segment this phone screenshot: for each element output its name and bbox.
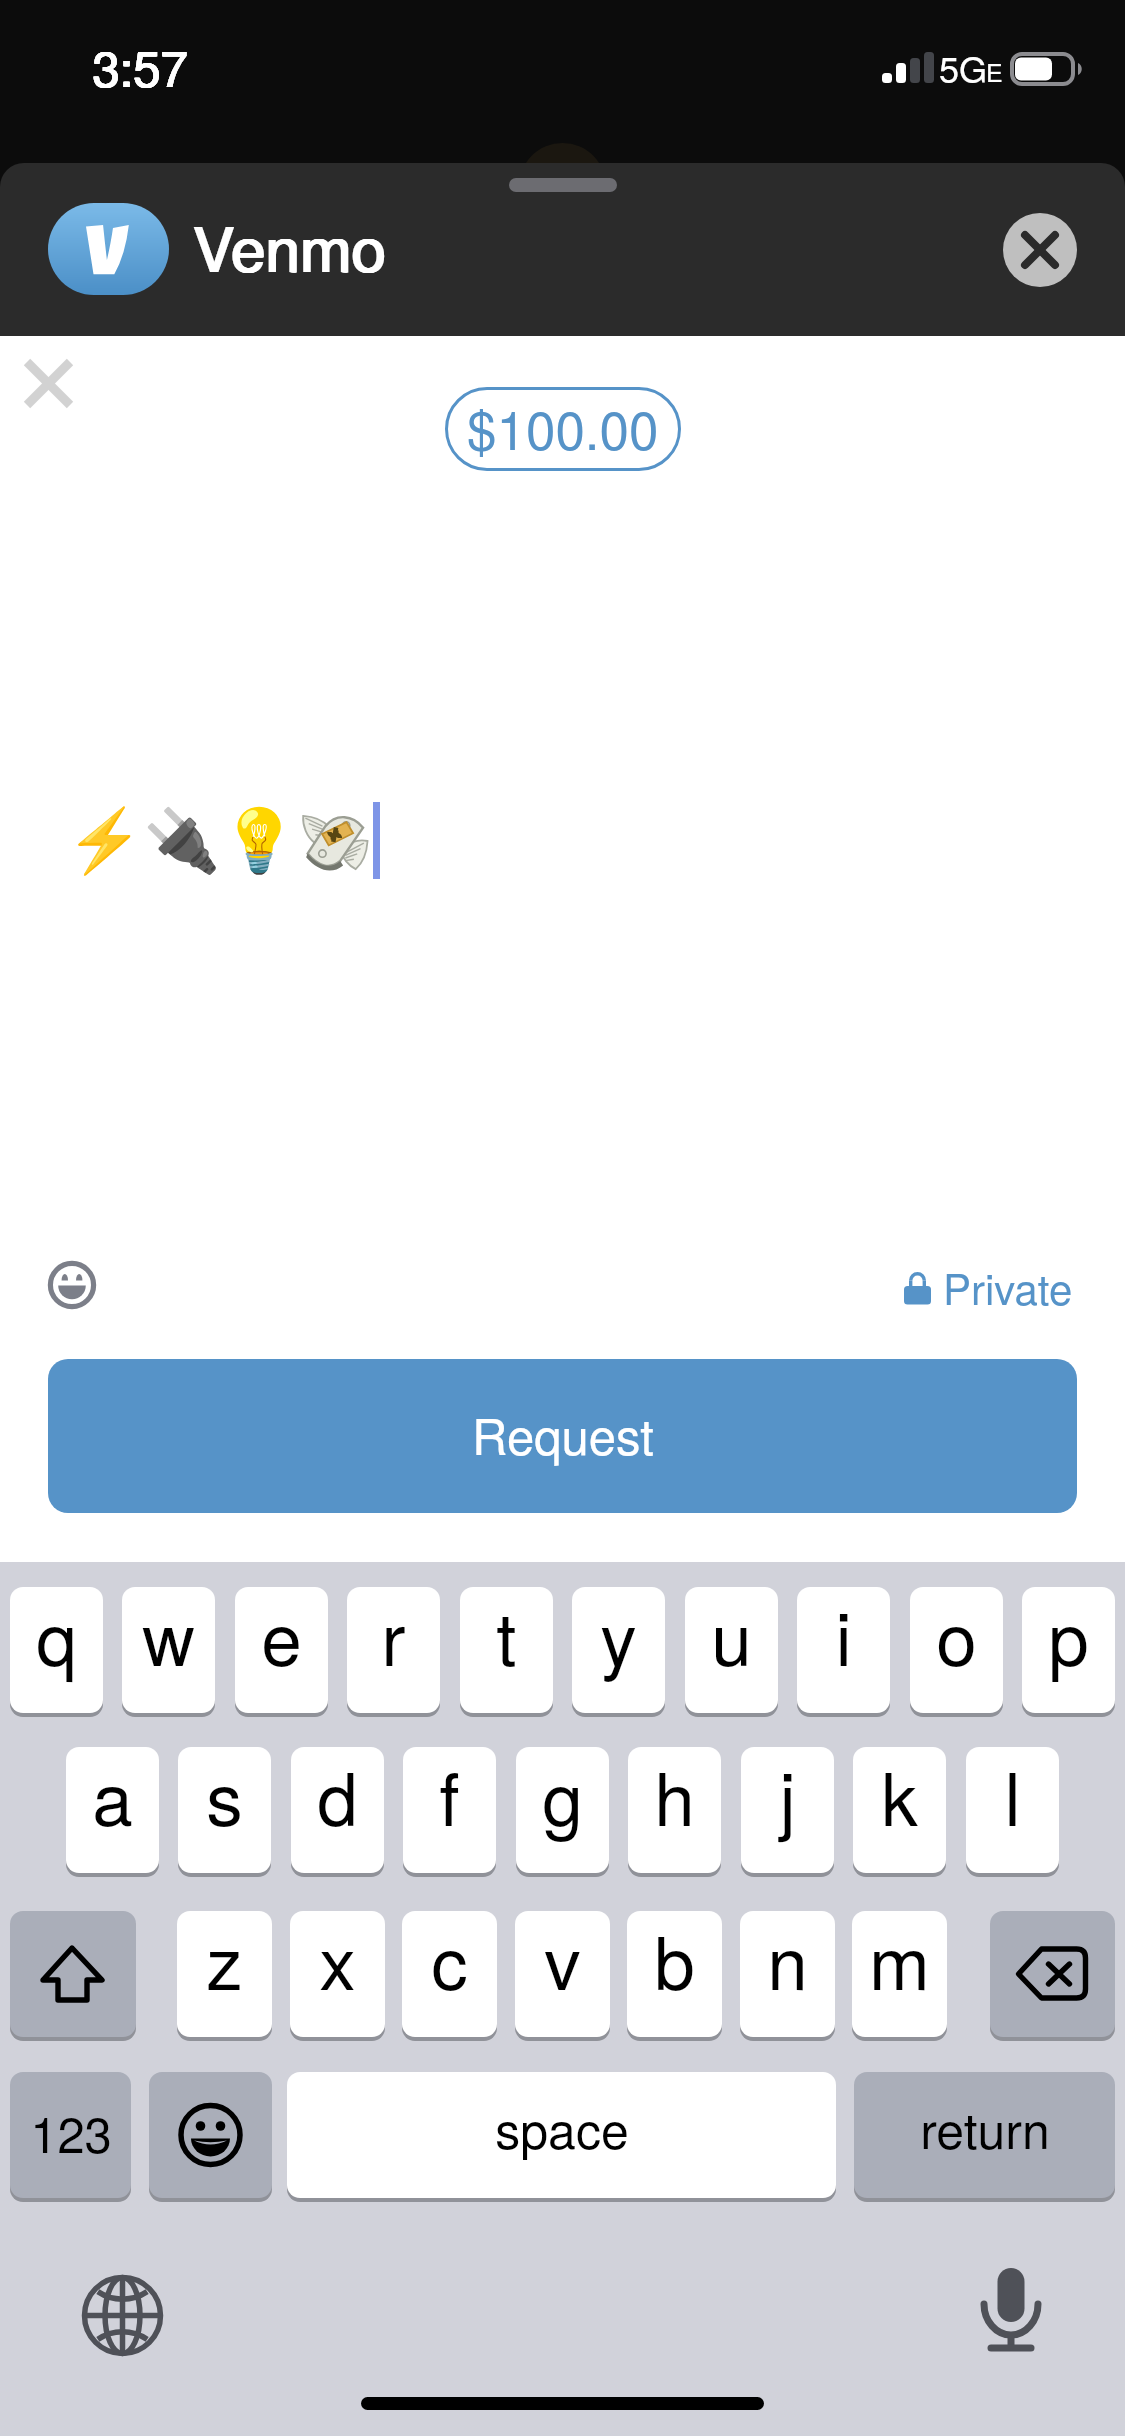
button[interactable]: y [572, 1587, 665, 1717]
button[interactable]: a [66, 1747, 159, 1877]
button[interactable]: space [287, 2072, 836, 2202]
button[interactable]: Venmo [48, 203, 169, 295]
button[interactable]: Private [904, 1257, 1073, 1317]
staticText: Private [943, 1257, 1073, 1317]
button[interactable]: Cancel [18, 353, 78, 413]
staticText: o [936, 1582, 977, 1687]
button[interactable]: c [402, 1911, 497, 2041]
button[interactable]: p [1022, 1587, 1115, 1717]
staticText: 123 [30, 2097, 112, 2167]
staticText: 3:57 [93, 31, 189, 101]
button[interactable]: w [122, 1587, 215, 1717]
staticText: c [431, 1906, 468, 2011]
button[interactable]: x [290, 1911, 385, 2041]
staticText: Venmo [193, 201, 387, 290]
staticText: 3:57 [93, 31, 189, 101]
staticText: E [986, 53, 1003, 89]
button[interactable]: return [854, 2072, 1115, 2202]
button[interactable]: 123 [10, 2072, 131, 2202]
button[interactable]: e [235, 1587, 328, 1717]
staticText: e [261, 1582, 302, 1687]
button[interactable]: Add emoji [44, 1257, 100, 1313]
button[interactable]: Shift [10, 1911, 136, 2041]
staticText: q [36, 1582, 77, 1687]
staticText: l [1004, 1742, 1021, 1847]
button[interactable]: u [685, 1587, 778, 1717]
staticText: p [1048, 1582, 1089, 1687]
staticText: t [496, 1582, 517, 1687]
button[interactable]: l [966, 1747, 1059, 1877]
staticText: m [869, 1906, 930, 2011]
staticText: Venmo [192, 201, 386, 290]
staticText: b [654, 1906, 695, 2011]
button[interactable]: z [177, 1911, 272, 2041]
staticText: space [495, 2092, 629, 2164]
staticText: k [881, 1742, 918, 1847]
button[interactable]: Close Venmo [1003, 213, 1077, 287]
button[interactable]: o [910, 1587, 1003, 1717]
button[interactable]: d [291, 1747, 384, 1877]
staticText: f [439, 1742, 460, 1847]
staticText: h [654, 1742, 695, 1847]
button[interactable]: j [741, 1747, 834, 1877]
staticText: u [711, 1582, 752, 1687]
staticText: 3:57 [92, 31, 188, 101]
button[interactable]: h [628, 1747, 721, 1877]
staticText: 5G [939, 42, 988, 94]
button[interactable]: $100.00 [445, 387, 681, 471]
staticText: z [206, 1906, 243, 2011]
staticText: r [381, 1582, 406, 1687]
button[interactable]: k [853, 1747, 946, 1877]
button[interactable]: r [347, 1587, 440, 1717]
staticText: Request [472, 1399, 654, 1469]
button[interactable]: n [740, 1911, 835, 2041]
button[interactable]: b [627, 1911, 722, 2041]
staticText: d [317, 1742, 358, 1847]
staticText: Venmo [193, 201, 387, 290]
staticText: a [92, 1742, 133, 1847]
button[interactable]: f [403, 1747, 496, 1877]
button[interactable]: q [10, 1587, 103, 1717]
button[interactable]: t [460, 1587, 553, 1717]
staticText: i [835, 1582, 852, 1687]
button[interactable]: v [515, 1911, 610, 2041]
button[interactable]: i [797, 1587, 890, 1717]
staticText: $100.00 [467, 389, 659, 465]
button[interactable]: Backspace [990, 1911, 1115, 2041]
staticText: g [542, 1742, 583, 1847]
staticText: x [319, 1906, 356, 2011]
button[interactable]: g [516, 1747, 609, 1877]
button[interactable]: Emoji keyboard [149, 2072, 272, 2202]
staticText: n [767, 1906, 808, 2011]
button[interactable]: Request [48, 1359, 1077, 1513]
button[interactable]: Dictation [971, 2266, 1051, 2352]
staticText: ⚡🔌💡 [66, 804, 298, 877]
staticText: y [600, 1582, 637, 1687]
staticText: w [142, 1582, 195, 1687]
staticText: j [779, 1742, 796, 1847]
staticText: 3:57 [92, 31, 188, 101]
button[interactable]: m [852, 1911, 947, 2041]
staticText: return [920, 2092, 1050, 2164]
staticText: s [206, 1742, 243, 1847]
button[interactable]: s [178, 1747, 271, 1877]
staticText: Venmo [194, 201, 388, 290]
button[interactable]: Switch keyboard [82, 2275, 163, 2356]
staticText: v [544, 1906, 581, 2011]
